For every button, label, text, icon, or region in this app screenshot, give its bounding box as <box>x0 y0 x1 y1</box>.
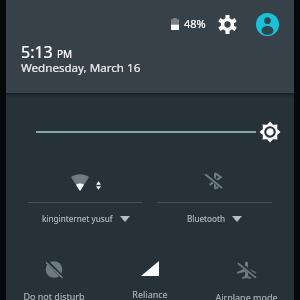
button[interactable]: User profile <box>253 10 281 38</box>
button[interactable]: Airplane mode <box>198 248 294 300</box>
staticText: kinginternet yusuf <box>42 213 113 224</box>
button[interactable]: Brightness <box>6 98 294 160</box>
staticText: 5:13 <box>21 41 53 63</box>
staticText: Bluetooth <box>187 213 225 224</box>
button[interactable]: Reliance <box>102 248 198 300</box>
staticText: PM <box>57 47 73 61</box>
button[interactable]: Bluetooth <box>150 160 279 234</box>
staticText: Do not disturb <box>23 290 85 300</box>
button[interactable]: Do not disturb <box>6 248 102 300</box>
button[interactable]: kinginternet yusuf <box>21 160 150 234</box>
button[interactable]: Settings <box>214 11 240 37</box>
staticText: 48% <box>184 16 206 31</box>
staticText: Reliance <box>132 288 168 300</box>
staticText: Wednesday, March 16 <box>21 60 141 76</box>
staticText: Airplane mode <box>215 291 278 300</box>
